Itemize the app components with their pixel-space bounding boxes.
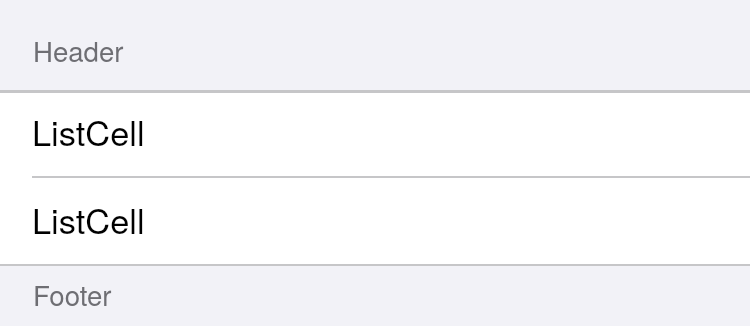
staticText: ListCell	[32, 107, 145, 156]
button[interactable]: ListCell	[0, 178, 750, 264]
staticText: Header	[33, 30, 124, 70]
other: Grouped list	[0, 0, 750, 326]
button[interactable]: ListCell	[0, 93, 750, 176]
staticText: Footer	[33, 274, 112, 314]
staticText: ListCell	[32, 195, 145, 244]
